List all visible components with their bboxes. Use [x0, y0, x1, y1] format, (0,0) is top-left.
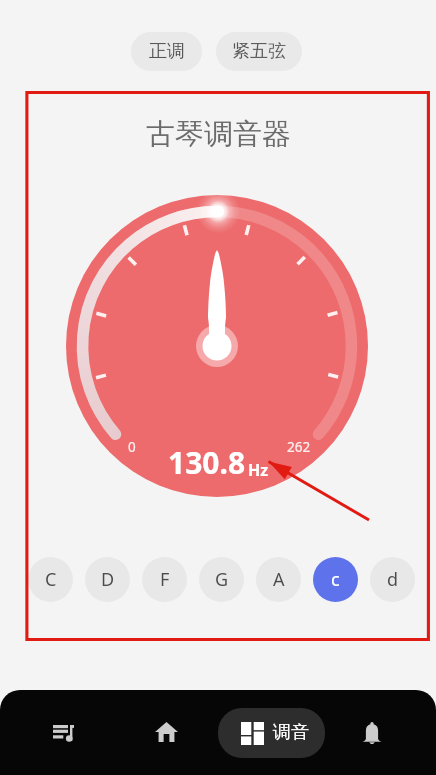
button[interactable]: d — [370, 557, 415, 602]
button[interactable]: 正调 — [131, 32, 202, 71]
button[interactable]: Home — [133, 703, 199, 751]
staticText: 正调 — [149, 40, 185, 63]
button[interactable]: C — [28, 557, 73, 602]
staticText: D — [101, 567, 115, 592]
button[interactable]: 紧五弦 — [216, 32, 302, 71]
staticText: 130.8 — [168, 442, 246, 483]
button[interactable]: G — [199, 557, 244, 602]
staticText: G — [215, 567, 229, 592]
staticText: 调音 — [273, 721, 309, 744]
staticText: F — [160, 567, 170, 592]
button[interactable]: c — [313, 557, 358, 602]
staticText: 古琴调音器 — [146, 116, 291, 153]
button[interactable]: F — [142, 557, 187, 602]
staticText: c — [331, 567, 340, 592]
staticText: Hz — [248, 459, 269, 481]
staticText: 紧五弦 — [232, 40, 286, 63]
staticText: A — [273, 567, 285, 592]
button[interactable]: 调音 — [218, 708, 325, 758]
staticText: 262 — [287, 438, 311, 456]
staticText: d — [387, 567, 399, 592]
button[interactable]: Notifications — [339, 703, 405, 751]
button[interactable]: Playlist — [30, 703, 96, 751]
button[interactable]: D — [85, 557, 130, 602]
staticText: C — [45, 567, 57, 592]
button[interactable]: A — [256, 557, 301, 602]
staticText: 0 — [128, 438, 136, 456]
